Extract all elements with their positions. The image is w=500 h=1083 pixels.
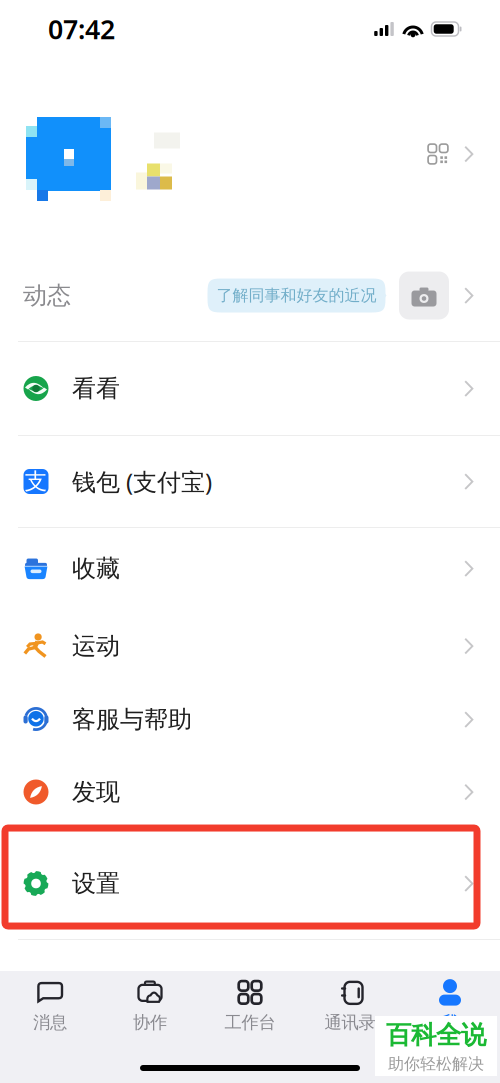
staticText: 工作台: [224, 1012, 275, 1033]
button[interactable]: 发现: [0, 756, 500, 828]
button[interactable]: 支: [0, 436, 500, 527]
button[interactable]: 客服与帮助: [0, 683, 500, 756]
button[interactable]: 动态: [0, 250, 500, 342]
staticText: 百科全说: [386, 1019, 486, 1050]
staticText: 我: [441, 1012, 458, 1033]
button[interactable]: 我: [400, 971, 500, 1041]
staticText: 收藏: [72, 554, 120, 583]
staticText: 07:42: [48, 11, 115, 47]
button[interactable]: 协作: [100, 971, 200, 1041]
staticText: 通讯录: [324, 1012, 375, 1033]
staticText: 运动: [72, 631, 120, 661]
button[interactable]: 看看: [0, 342, 500, 435]
button[interactable]: 设置: [0, 828, 500, 939]
staticText: 看看: [72, 374, 120, 403]
staticText: 协作: [133, 1012, 167, 1033]
button[interactable]: 收藏: [0, 528, 500, 609]
staticText: 消息: [33, 1012, 67, 1033]
staticText: 支: [24, 468, 47, 495]
staticText: 发现: [72, 777, 120, 807]
staticText: 钱包 (支付宝): [72, 466, 212, 497]
button[interactable]: 运动: [0, 609, 500, 683]
button[interactable]: 消息: [0, 971, 100, 1041]
staticText: 客服与帮助: [72, 705, 192, 734]
button[interactable]: 工作台: [200, 971, 300, 1041]
staticText: 了解同事和好友的近况: [216, 286, 376, 305]
staticText: 助你轻松解决: [388, 1054, 484, 1074]
staticText: 动态: [23, 281, 71, 310]
staticText: 设置: [72, 869, 120, 898]
button[interactable]: 通讯录: [300, 971, 400, 1041]
button[interactable]: [0, 58, 500, 250]
